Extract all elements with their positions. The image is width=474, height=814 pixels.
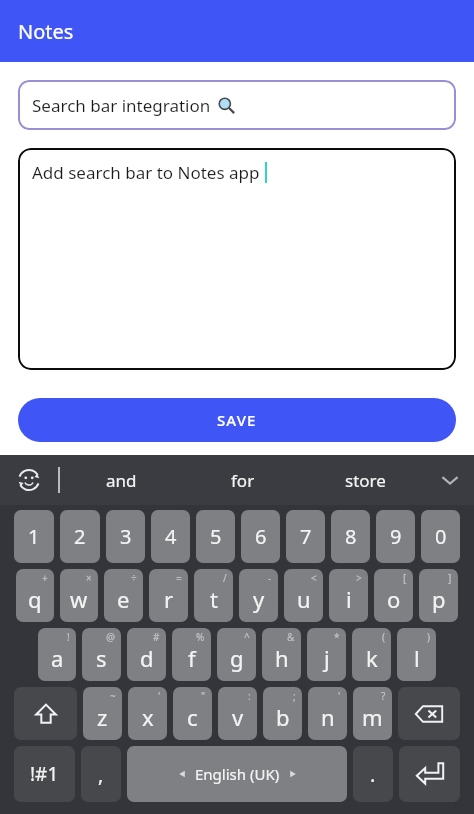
- button[interactable]: 0: [421, 510, 460, 563]
- staticText: store: [345, 469, 386, 492]
- button[interactable]: Shift: [14, 687, 77, 740]
- staticText: Notes: [18, 18, 74, 45]
- staticText: %: [196, 630, 205, 644]
- button[interactable]: ~: [83, 687, 122, 740]
- button[interactable]: ^: [217, 628, 256, 681]
- button[interactable]: 8: [331, 510, 370, 563]
- staticText: for: [231, 469, 255, 492]
- staticText: ": [201, 689, 206, 703]
- button[interactable]: 6: [241, 510, 280, 563]
- button[interactable]: Add search bar to Notes app: [18, 148, 456, 370]
- staticText: #: [153, 630, 160, 644]
- button[interactable]: ': [308, 687, 347, 740]
- button[interactable]: 2: [60, 510, 100, 563]
- staticText: t: [210, 584, 218, 614]
- staticText: 0: [435, 523, 447, 550]
- staticText: Add search bar to Notes app: [32, 161, 260, 184]
- button[interactable]: SAVE: [18, 398, 456, 442]
- button[interactable]: %: [172, 628, 211, 681]
- button[interactable]: #: [127, 628, 166, 681]
- staticText: r: [164, 584, 174, 614]
- button[interactable]: for: [182, 455, 304, 505]
- staticText: g: [230, 643, 244, 673]
- staticText: n: [321, 702, 335, 732]
- button[interactable]: >: [329, 569, 368, 622]
- button[interactable]: ": [173, 687, 212, 740]
- staticText: ): [427, 630, 430, 644]
- staticText: -: [268, 571, 272, 585]
- button[interactable]: 5: [196, 510, 235, 563]
- staticText: e: [117, 584, 130, 614]
- staticText: =: [176, 571, 182, 585]
- staticText: ;: [293, 689, 296, 703]
- button[interactable]: @: [82, 628, 121, 681]
- staticText: /: [223, 571, 227, 585]
- button[interactable]: [: [374, 569, 413, 622]
- staticText: a: [51, 643, 64, 673]
- button[interactable]: ÷: [104, 569, 143, 622]
- staticText: *: [334, 630, 340, 644]
- button[interactable]: .: [353, 746, 393, 802]
- button[interactable]: &: [262, 628, 301, 681]
- button[interactable]: store: [304, 455, 426, 505]
- button[interactable]: ]: [419, 569, 458, 622]
- button[interactable]: /: [194, 569, 233, 622]
- staticText: [: [403, 571, 407, 585]
- staticText: 2: [74, 523, 86, 550]
- staticText: Search bar integration: [32, 94, 211, 117]
- button[interactable]: Enter: [399, 746, 460, 802]
- button[interactable]: ×: [60, 569, 98, 622]
- staticText: z: [97, 702, 108, 732]
- button[interactable]: ?: [353, 687, 392, 740]
- staticText: 6: [255, 523, 267, 550]
- button[interactable]: -: [239, 569, 278, 622]
- staticText: ^: [244, 630, 250, 644]
- button[interactable]: English (UK): [127, 746, 347, 802]
- staticText: h: [275, 643, 289, 673]
- staticText: 3: [120, 523, 132, 550]
- staticText: ': [338, 689, 341, 703]
- staticText: English (UK): [195, 764, 280, 784]
- button[interactable]: 3: [106, 510, 145, 563]
- staticText: f: [188, 643, 196, 673]
- staticText: !: [67, 630, 70, 644]
- button[interactable]: 9: [376, 510, 415, 563]
- staticText: ?: [381, 689, 386, 703]
- button[interactable]: Backspace: [398, 687, 460, 740]
- button[interactable]: 7: [286, 510, 325, 563]
- button[interactable]: ,: [81, 746, 121, 802]
- button[interactable]: (: [352, 628, 391, 681]
- staticText: 9: [390, 523, 402, 550]
- staticText: i: [346, 584, 352, 614]
- staticText: SAVE: [217, 410, 257, 430]
- button[interactable]: =: [149, 569, 188, 622]
- button[interactable]: :: [218, 687, 257, 740]
- staticText: 7: [300, 523, 312, 550]
- staticText: y: [253, 584, 265, 614]
- button[interactable]: and: [60, 455, 182, 505]
- staticText: w: [70, 584, 88, 614]
- staticText: !#1: [30, 761, 59, 787]
- button[interactable]: +: [16, 569, 54, 622]
- button[interactable]: Expand suggestions: [426, 455, 474, 505]
- staticText: ,: [98, 761, 104, 788]
- button[interactable]: !#1: [14, 746, 75, 802]
- button[interactable]: ;: [263, 687, 302, 740]
- staticText: and: [106, 469, 137, 492]
- button[interactable]: Emoji: [0, 455, 58, 505]
- button[interactable]: <: [284, 569, 323, 622]
- button[interactable]: *: [307, 628, 346, 681]
- staticText: @: [106, 630, 115, 644]
- button[interactable]: 4: [151, 510, 190, 563]
- button[interactable]: ): [397, 628, 436, 681]
- button[interactable]: 1: [14, 510, 54, 563]
- staticText: 5: [210, 523, 222, 550]
- staticText: .: [370, 761, 376, 788]
- button[interactable]: !: [38, 628, 76, 681]
- button[interactable]: Search bar integration: [18, 80, 456, 130]
- staticText: u: [297, 584, 311, 614]
- button[interactable]: ': [128, 687, 167, 740]
- staticText: +: [42, 571, 48, 585]
- staticText: 1: [28, 523, 40, 550]
- staticText: >: [356, 571, 362, 585]
